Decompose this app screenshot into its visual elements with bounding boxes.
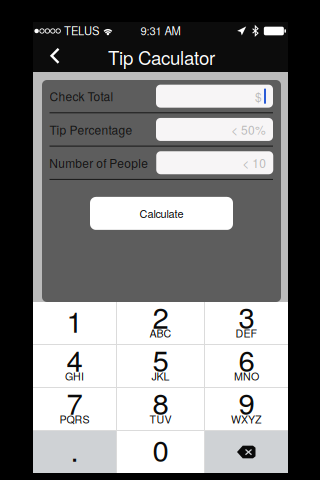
button[interactable]: 1: [33, 302, 116, 344]
staticText: 6: [238, 338, 254, 380]
button[interactable]: 5: [117, 345, 204, 387]
button[interactable]: Decimal point: [33, 431, 116, 473]
button[interactable]: Delete: [205, 431, 288, 473]
staticText: 7: [66, 381, 82, 423]
button[interactable]: 7: [33, 388, 116, 430]
staticText: 9:31 AM: [140, 22, 180, 38]
staticText: GHI: [65, 368, 84, 384]
button[interactable]: 8: [117, 388, 204, 430]
button[interactable]: Calculate: [90, 197, 233, 230]
staticText: TUV: [149, 411, 171, 427]
staticText: 2: [152, 295, 168, 337]
staticText: 0: [152, 428, 168, 470]
staticText: Calculate: [139, 206, 183, 221]
staticText: DEF: [235, 325, 257, 341]
staticText: PQRS: [59, 411, 89, 427]
staticText: 3: [238, 295, 254, 337]
staticText: MNO: [234, 368, 259, 384]
staticText: JKL: [151, 368, 169, 384]
staticText: WXYZ: [231, 411, 262, 427]
button[interactable]: 2: [117, 302, 204, 344]
staticText: 1: [66, 299, 82, 341]
staticText: Tip Percentage: [49, 121, 132, 138]
button[interactable]: 0: [117, 431, 204, 473]
staticText: Tip Caculator: [108, 44, 215, 70]
staticText: ABC: [149, 325, 171, 341]
staticText: 9: [238, 381, 254, 423]
button[interactable]: 9: [205, 388, 288, 430]
button[interactable]: 4: [33, 345, 116, 387]
staticText: Number of People: [49, 154, 148, 171]
button[interactable]: 6: [205, 345, 288, 387]
staticText: .: [70, 428, 78, 470]
staticText: TELUS: [64, 22, 99, 38]
staticText: 5: [152, 338, 168, 380]
button[interactable]: 3: [205, 302, 288, 344]
staticText: 8: [152, 381, 168, 423]
staticText: 4: [66, 338, 82, 380]
button[interactable]: Back: [33, 40, 77, 72]
staticText: $: [255, 88, 262, 105]
staticText: < 50%: [231, 121, 266, 138]
staticText: < 10: [242, 154, 266, 171]
staticText: Check Total: [49, 88, 113, 105]
